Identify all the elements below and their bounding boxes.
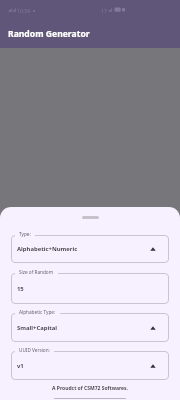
button[interactable]: Alphabetic+Numeric xyxy=(11,235,169,263)
staticText: Random Generator xyxy=(8,28,90,40)
staticText: 17 xyxy=(101,7,107,14)
staticText: Alphabetic Type: xyxy=(19,309,56,315)
other: Open dropdown xyxy=(150,363,156,369)
other: Open dropdown xyxy=(150,246,156,252)
staticText: Alphabetic+Numeric xyxy=(17,245,78,253)
staticText: 15 xyxy=(17,285,24,293)
button[interactable]: Small+Capital xyxy=(11,313,169,342)
button[interactable]: v1 xyxy=(11,351,169,380)
staticText: Size of Random xyxy=(19,269,54,275)
staticText: 10:59 xyxy=(17,7,31,14)
button[interactable]: 15 xyxy=(11,273,169,304)
staticText: Type: xyxy=(19,231,31,237)
staticText: v1 xyxy=(17,362,24,370)
staticText: Small+Capital xyxy=(17,324,58,332)
staticText: UUID Version: xyxy=(19,347,50,353)
other: Open dropdown xyxy=(150,325,156,331)
staticText: A Proudct of CSM72 Softwares. xyxy=(0,385,180,392)
